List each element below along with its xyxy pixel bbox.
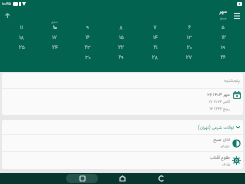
button[interactable]: ۱۷ [38, 33, 71, 43]
staticText: ۲۶ [220, 54, 226, 62]
button[interactable]: ۷ [138, 23, 172, 33]
button[interactable]: ۱۰ [38, 23, 71, 33]
staticText: ۱۶ [85, 34, 90, 42]
staticText: مهر [219, 8, 227, 16]
button[interactable]: اذان صبح [2, 135, 243, 151]
button[interactable]: Home [116, 173, 128, 184]
staticText: اوقات شرعی (تهران) [198, 124, 234, 131]
button[interactable]: ۸ [104, 23, 138, 33]
button[interactable]: اوقات شرعی (تهران) [2, 120, 243, 134]
staticText: ۰۴:۵۲ [220, 144, 230, 150]
staticText: ۱۷ [52, 34, 57, 42]
staticText: ۱۵ [119, 34, 124, 42]
button[interactable]: ۲۹ [104, 53, 138, 63]
staticText: ۶ [188, 24, 191, 32]
staticText: ۷ [153, 24, 157, 32]
staticText: ۱۷ اکتبر ۲۰۲۴ [209, 99, 230, 105]
staticText: ۹ [86, 24, 89, 32]
button[interactable]: ۲۸ [138, 53, 172, 63]
button[interactable]: ۱۵ [104, 33, 138, 43]
staticText: ۲۹ [118, 54, 124, 62]
staticText: ۳۰ [85, 54, 91, 62]
staticText: ۲۸ [152, 54, 158, 62]
staticText: طلوع آفتاب [210, 154, 230, 161]
button[interactable]: ۱۱ [5, 23, 38, 33]
button[interactable]: ۲۲ [104, 43, 138, 53]
button[interactable]: پنجشنبه [2, 73, 243, 88]
staticText: ۱۹ [221, 44, 225, 52]
staticText: اذان صبح [213, 136, 230, 143]
staticText: ۲۶ مهر ۱۴۰۳ [207, 91, 230, 98]
staticText: ۲۴ [52, 44, 58, 52]
button[interactable]: ۲۷ [172, 53, 206, 63]
button[interactable]: ۲۴ [38, 43, 71, 53]
button[interactable]: ۲۶ [206, 53, 240, 63]
staticText: ۱۱ [20, 24, 23, 32]
button[interactable]: ۲۰ [172, 43, 206, 53]
staticText: ۲۳ [84, 44, 91, 52]
staticText: ۲۲ [118, 44, 124, 52]
button[interactable]: مهر [219, 8, 227, 21]
staticText: ۱۰ [53, 24, 57, 32]
staticText: ۲۱ [153, 44, 158, 52]
button[interactable]: ۳۰ [71, 53, 104, 63]
button[interactable]: Recent apps [66, 174, 98, 183]
button[interactable]: ۶ [172, 23, 206, 33]
button[interactable]: ۱۴ [138, 33, 172, 43]
button[interactable]: Back [155, 173, 167, 184]
staticText: ۱۰:۴۵ [2, 1, 11, 7]
staticText: ۵ [221, 24, 225, 32]
staticText: ۱۸ [19, 34, 24, 42]
button[interactable]: ۱۶ [71, 33, 104, 43]
button[interactable]: ۲۳ [71, 43, 104, 53]
button[interactable]: ۱۸ [5, 33, 38, 43]
button[interactable]: ۲۱ [138, 43, 172, 53]
button[interactable]: ۹ [71, 23, 104, 33]
staticText: ۱۴ [153, 34, 158, 42]
button[interactable]: طلوع آفتاب [2, 152, 243, 169]
button[interactable]: ۱۳ [172, 33, 206, 43]
button[interactable]: ۱۲ [206, 33, 240, 43]
button[interactable]: Menu [231, 9, 243, 21]
staticText: ۲۷ [186, 54, 192, 62]
staticText: ۱۳ [187, 34, 192, 42]
staticText: پنجشنبه [224, 77, 240, 84]
button[interactable]: ۵ [206, 23, 240, 33]
staticText: ۱۲ [221, 34, 226, 42]
button[interactable]: ۲۵ [5, 43, 38, 53]
staticText: ۱۴۰۳ [220, 16, 227, 21]
staticText: تعطیل [51, 20, 58, 24]
staticText: ۱۳ ربیع ۱۴۴۶ [209, 106, 230, 112]
button[interactable]: ۱۹ [206, 43, 240, 53]
button[interactable]: ۲۶ مهر ۱۴۰۳ [2, 89, 243, 115]
button[interactable]: Today [1, 9, 13, 21]
staticText: ۸ [119, 24, 123, 32]
staticText: ۲۰ [187, 44, 192, 52]
staticText: ۲۵ [19, 44, 25, 52]
staticText: ۰۶:۱۵ [222, 162, 230, 168]
